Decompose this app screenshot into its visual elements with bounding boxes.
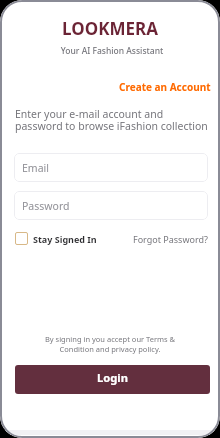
staticText: Stay Signed In bbox=[33, 233, 97, 245]
staticText: Email bbox=[22, 161, 49, 175]
staticText: Forgot Password? bbox=[133, 233, 208, 245]
staticText: LOOKMERA bbox=[0, 17, 220, 40]
staticText: Create an Account bbox=[119, 80, 211, 94]
button[interactable]: Stay Signed In bbox=[15, 232, 97, 245]
button[interactable]: Create an Account bbox=[119, 80, 220, 94]
button[interactable]: Login bbox=[15, 365, 210, 394]
button[interactable]: Forgot Password? bbox=[133, 233, 208, 245]
button[interactable]: Email bbox=[14, 153, 208, 182]
staticText: By signing in you accept our Terms & Con… bbox=[0, 334, 220, 354]
staticText: Enter your e-mail account and password t… bbox=[15, 107, 208, 133]
staticText: Password bbox=[22, 199, 70, 213]
staticText: Login bbox=[97, 370, 128, 385]
button[interactable]: Password bbox=[14, 191, 208, 220]
staticText: Your AI Fashion Assistant bbox=[2, 45, 220, 57]
